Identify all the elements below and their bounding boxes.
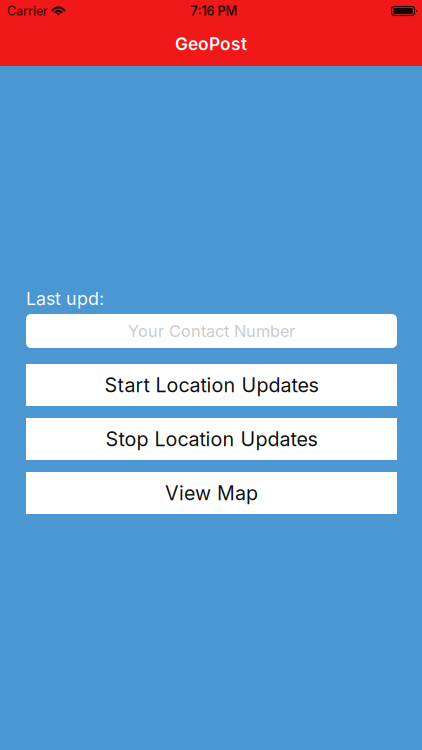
staticText: Your Contact Number: [128, 321, 295, 341]
staticText: Stop Location Updates: [105, 427, 317, 451]
staticText: GeoPost: [175, 33, 247, 54]
staticText: Last upd:: [26, 288, 104, 309]
staticText: 7:16 PM: [190, 3, 237, 19]
staticText: Start Location Updates: [104, 373, 318, 397]
button[interactable]: View Map: [26, 472, 397, 514]
staticText: View Map: [165, 481, 258, 505]
button[interactable]: Start Location Updates: [26, 364, 397, 406]
button[interactable]: Stop Location Updates: [26, 418, 397, 460]
button[interactable]: Your Contact Number: [26, 314, 397, 348]
staticText: Carrier: [7, 3, 48, 19]
